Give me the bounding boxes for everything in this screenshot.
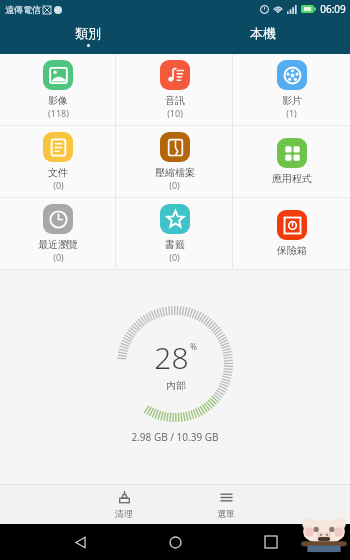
button[interactable]: 保險箱 [233,198,350,269]
button[interactable]: 影片 [233,54,350,125]
staticText: (1) [286,107,297,119]
staticText: (0) [169,251,180,263]
button[interactable]: 壓縮檔案 [116,126,233,197]
button[interactable]: 類別 [0,18,175,54]
staticText: 影片 [282,94,302,107]
staticText: 2.98 GB / 10.39 GB [131,430,219,444]
staticText: 音訊 [165,94,185,107]
button[interactable]: 書籤 [116,198,233,269]
staticText: 06:09 [320,2,346,16]
staticText: 文件 [48,166,68,179]
staticText: % [190,341,197,352]
staticText: 類別 [75,25,101,41]
staticText: 應用程式 [272,172,312,185]
button[interactable]: Home [159,526,191,558]
staticText: (0) [53,179,64,191]
staticText: (0) [169,179,180,191]
staticText: 遠傳電信 [5,4,41,15]
button[interactable]: 音訊 [116,54,233,125]
button[interactable]: 影像 [0,54,116,125]
staticText: 本機 [250,25,276,41]
staticText: 書籤 [165,238,185,251]
button[interactable]: 應用程式 [233,126,350,197]
button[interactable]: 本機 [175,18,350,54]
button[interactable]: 選單 [175,484,277,524]
staticText: (118) [48,107,69,119]
staticText: 選單 [217,508,235,519]
button[interactable]: 最近瀏覽 [0,198,116,269]
button[interactable]: Recents [255,526,287,558]
staticText: 28 [154,337,189,378]
button[interactable]: Back [64,526,96,558]
staticText: (0) [53,251,64,263]
staticText: 清理 [115,508,133,519]
staticText: (10) [167,107,183,119]
staticText: 內部 [166,379,186,392]
button[interactable]: 清理 [73,484,175,524]
staticText: 最近瀏覽 [38,238,78,251]
staticText: 保險箱 [277,244,307,257]
staticText: 影像 [48,94,68,107]
staticText: 壓縮檔案 [155,166,195,179]
button[interactable]: 文件 [0,126,116,197]
